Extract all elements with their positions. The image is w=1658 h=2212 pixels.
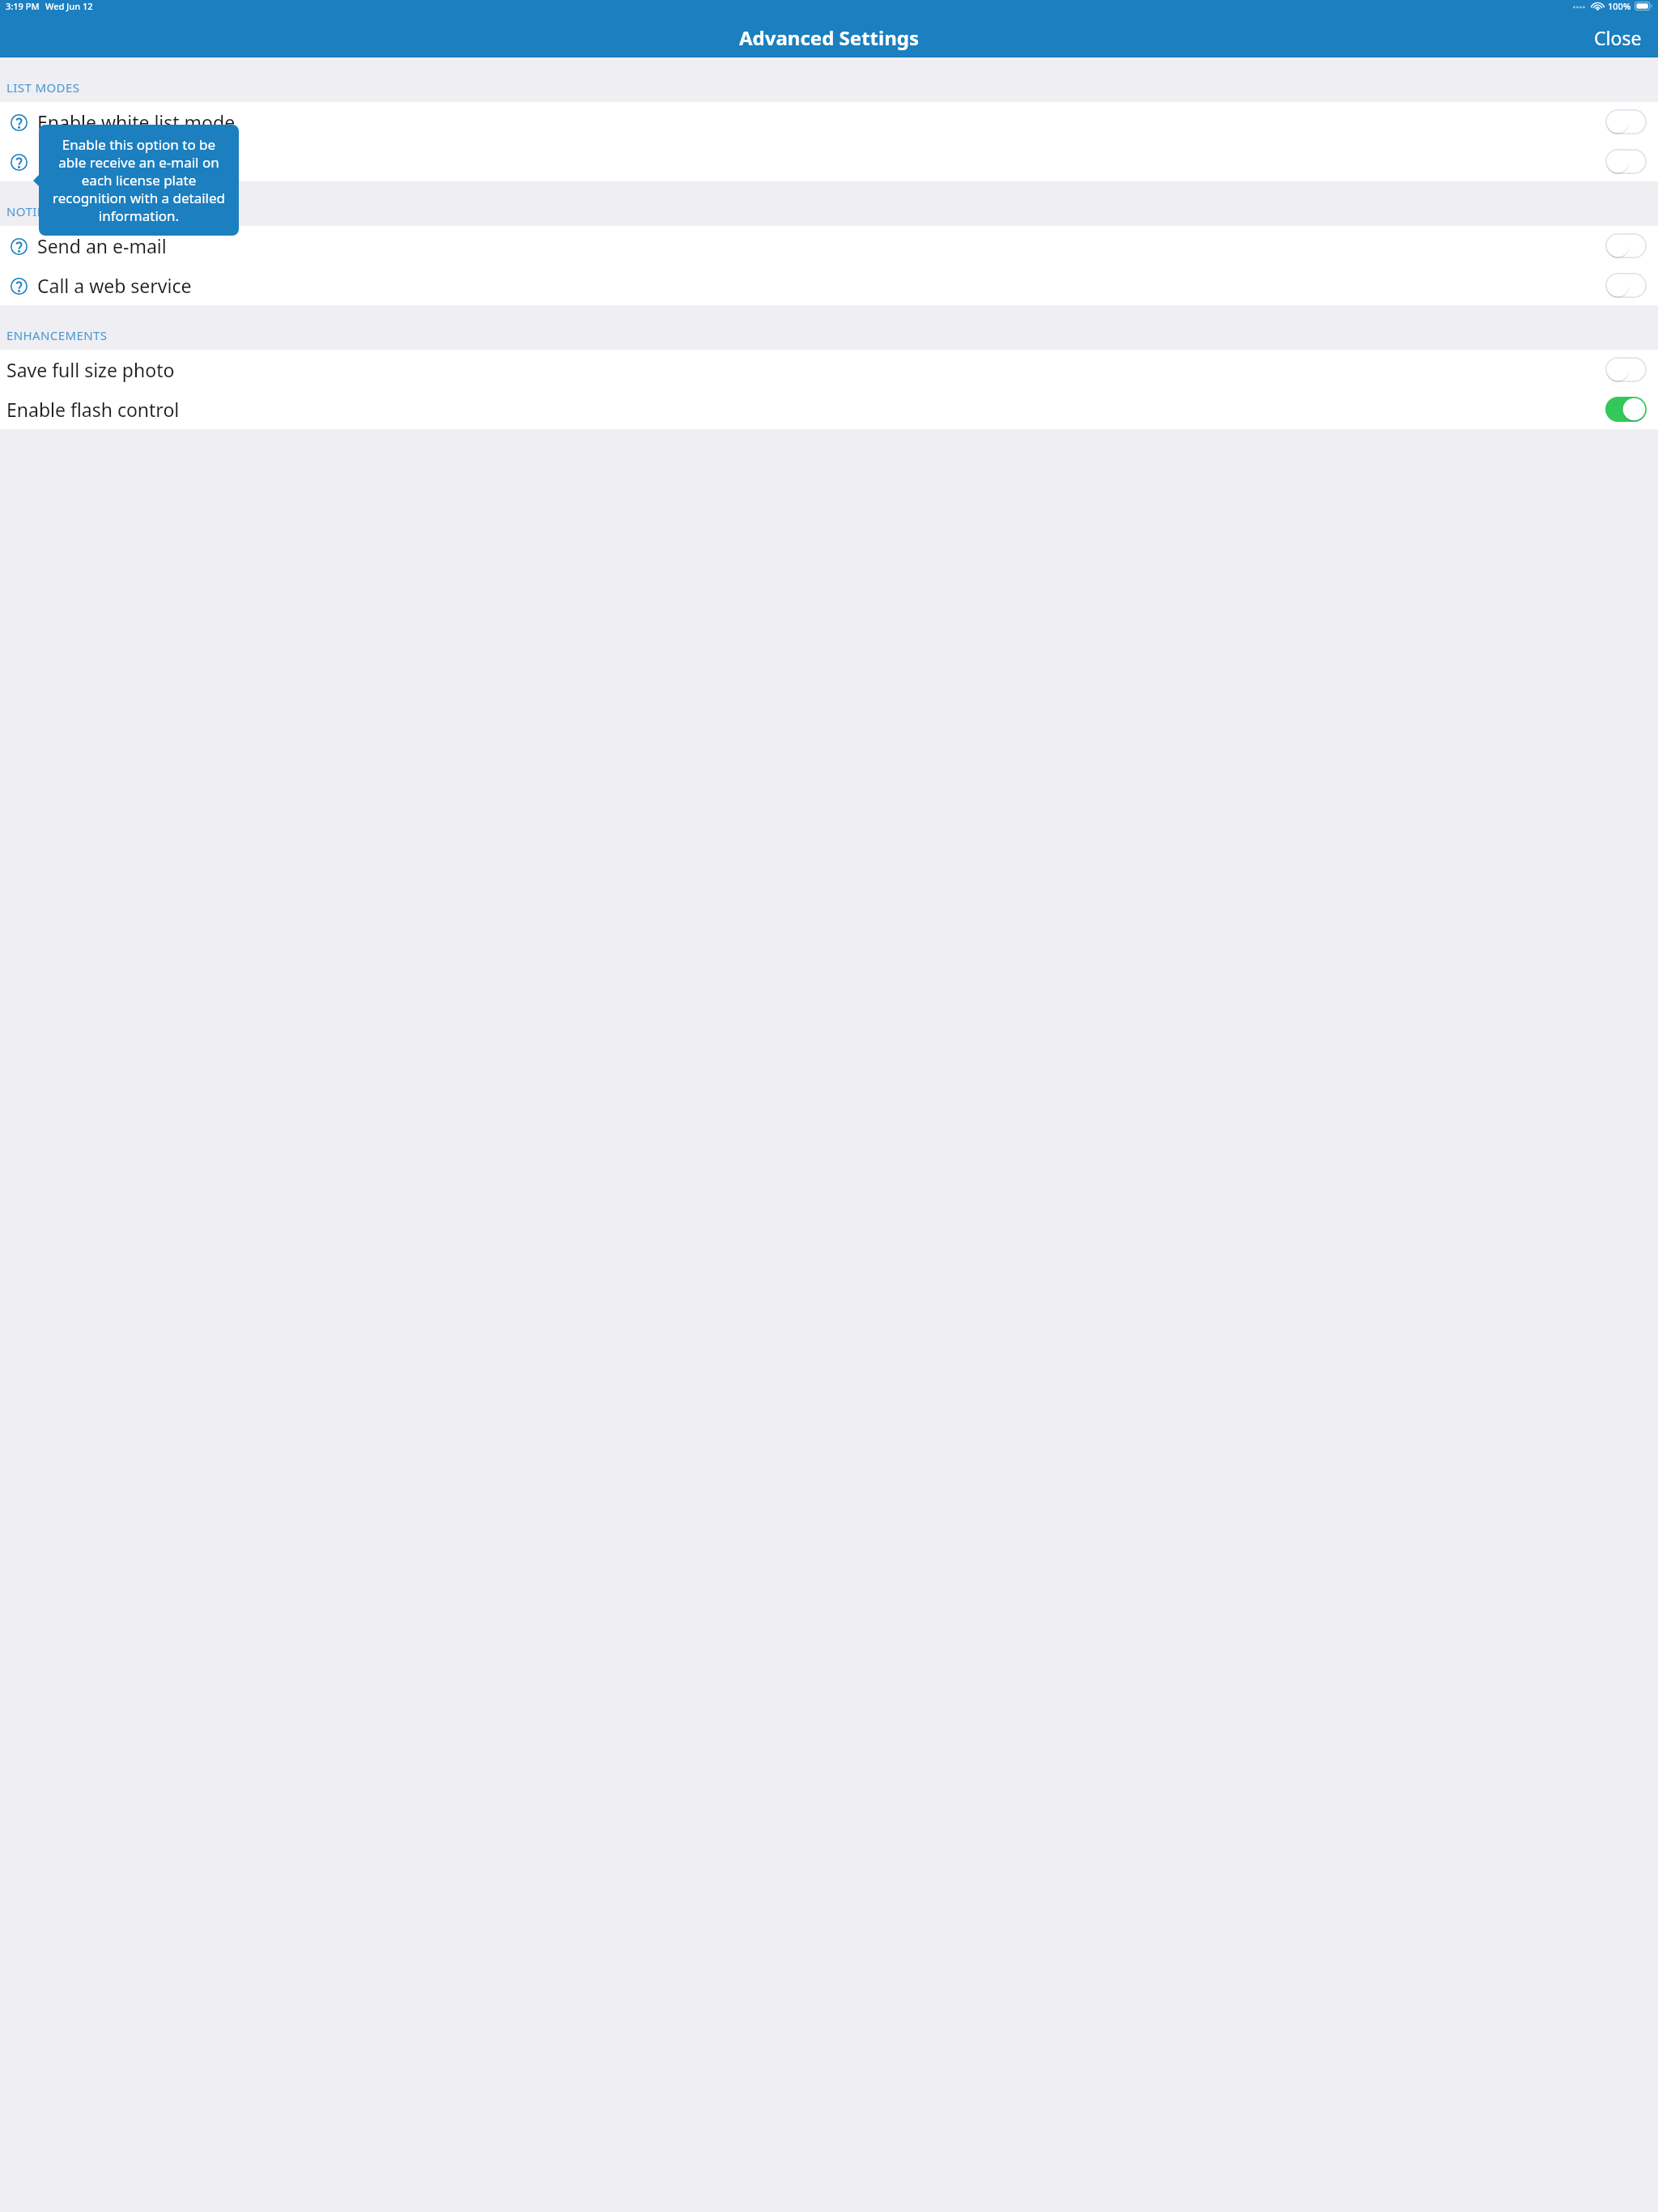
button[interactable]: Enable flash control: [0, 389, 1658, 429]
button[interactable]: Off: [1605, 149, 1647, 174]
staticText: 100%: [1608, 0, 1631, 12]
staticText: NOTIFICATIONS: [6, 203, 101, 219]
button[interactable]: Help: Enable black list mode: [6, 150, 31, 174]
button[interactable]: On: [1605, 397, 1647, 422]
button[interactable]: Help: Call a web service: [0, 266, 1658, 305]
button[interactable]: Off: [1605, 357, 1647, 382]
staticText: Save full size photo: [6, 357, 175, 382]
staticText: Advanced Settings: [739, 24, 919, 51]
staticText: ENHANCEMENTS: [6, 327, 108, 343]
staticText: Wed Jun 12: [45, 0, 93, 12]
button[interactable]: Save full size photo: [0, 350, 1658, 389]
button[interactable]: Close: [1578, 19, 1658, 57]
staticText: Enable white list mode: [37, 109, 236, 134]
staticText: Close: [1594, 25, 1642, 50]
staticText: Send an e-mail: [37, 233, 167, 258]
button[interactable]: Enable this option to be able receive an…: [39, 125, 239, 236]
button[interactable]: Off: [1605, 109, 1647, 134]
staticText: Enable this option to be able receive an…: [48, 135, 230, 225]
button[interactable]: Help: Enable black list mode: [0, 142, 1658, 181]
button[interactable]: Help: Send an e-mail: [0, 226, 1658, 266]
button[interactable]: Help: Call a web service: [6, 274, 31, 298]
button[interactable]: Help: Enable white list mode: [0, 102, 1658, 142]
staticText: Enable flash control: [6, 397, 180, 422]
staticText: Enable black list mode: [37, 149, 232, 174]
staticText: Call a web service: [37, 273, 192, 298]
staticText: LIST MODES: [6, 79, 80, 96]
staticText: 3:19 PM: [6, 0, 40, 12]
button[interactable]: Off: [1605, 233, 1647, 258]
button[interactable]: Off: [1605, 273, 1647, 298]
button[interactable]: Help: Enable white list mode: [6, 110, 31, 134]
button[interactable]: Help: Send an e-mail: [6, 234, 31, 258]
